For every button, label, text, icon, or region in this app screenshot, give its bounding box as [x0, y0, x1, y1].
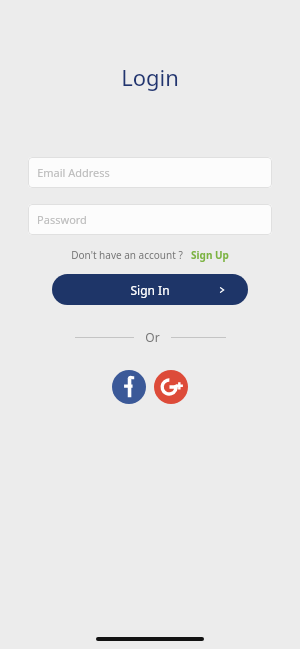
button[interactable]: Password [28, 204, 272, 235]
staticText: Don't have an account ? [71, 248, 183, 262]
staticText: Password [37, 212, 87, 227]
staticText: Sign In [130, 282, 170, 298]
staticText: Or [145, 329, 160, 345]
button[interactable]: Sign In [52, 274, 248, 305]
staticText: Sign Up [191, 248, 229, 262]
button[interactable]: Sign Up [191, 248, 229, 262]
button[interactable]: Sign in with Google Plus [154, 370, 188, 404]
staticText: Login [121, 62, 179, 92]
button[interactable]: Email Address [28, 157, 272, 188]
staticText: Email Address [37, 165, 110, 180]
button[interactable]: Sign in with Facebook [112, 370, 146, 404]
